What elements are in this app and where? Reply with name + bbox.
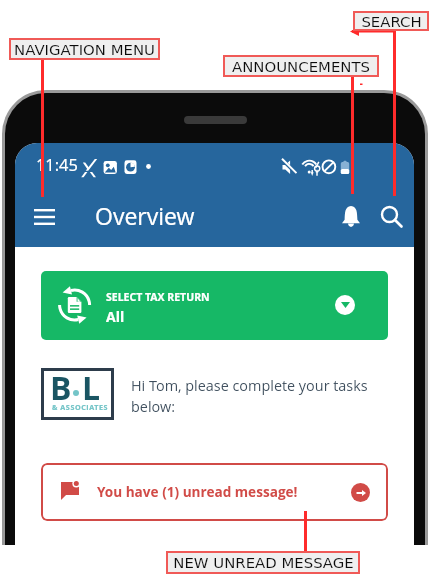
staticText: You have (1) unread message! (97, 482, 298, 501)
staticText: Hi Tom, please complete your tasks below… (131, 376, 381, 416)
button[interactable]: Navigation menu (23, 196, 65, 238)
staticText: 11:45 (36, 153, 78, 175)
button[interactable]: SELECT TAX RETURN (41, 271, 388, 340)
button[interactable]: Announcements (330, 196, 372, 238)
staticText: NEW UNREAD MESSAGE (173, 554, 354, 571)
staticText: ANNOUNCEMENTS (232, 58, 370, 75)
staticText: B (50, 366, 72, 410)
staticText: SELECT TAX RETURN (106, 290, 210, 304)
staticText: L (82, 366, 101, 410)
staticText: Overview (95, 200, 195, 231)
staticText: NAVIGATION MENU (14, 41, 155, 58)
staticText: All (106, 307, 125, 326)
button[interactable]: You have (1) unread message! (41, 463, 388, 521)
button[interactable]: Search (371, 196, 413, 238)
staticText: SEARCH (361, 13, 422, 30)
staticText: & ASSOCIATES (52, 402, 109, 412)
